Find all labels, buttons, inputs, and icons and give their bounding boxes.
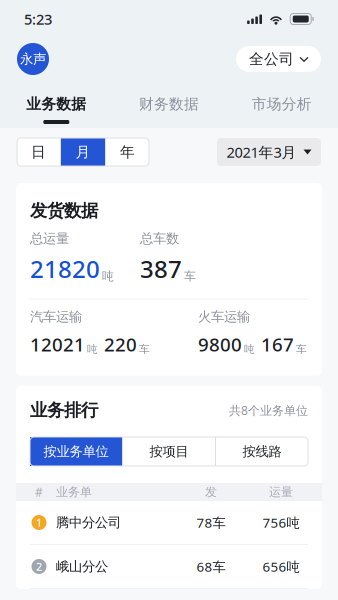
button[interactable]: 1 bbox=[16, 501, 322, 544]
staticText: 21820 bbox=[30, 253, 100, 285]
staticText: 总车数 bbox=[140, 230, 179, 247]
staticText: 总运量 bbox=[30, 230, 69, 247]
button[interactable]: 公司徽标 bbox=[17, 43, 49, 75]
staticText: 按线路 bbox=[242, 443, 281, 460]
button[interactable]: 按项目 bbox=[123, 437, 215, 466]
staticText: 按项目 bbox=[149, 443, 188, 460]
staticText: 吨 bbox=[102, 269, 114, 283]
staticText: 火车运输 bbox=[198, 308, 250, 325]
staticText: 2021年3月 bbox=[226, 142, 296, 162]
staticText: 汽车运输 bbox=[30, 308, 82, 325]
staticText: 业务排行 bbox=[30, 400, 98, 421]
staticText: 业务单 bbox=[56, 485, 92, 499]
staticText: 全公司 bbox=[249, 50, 294, 68]
button[interactable]: 全公司 bbox=[236, 46, 321, 72]
staticText: 656吨 bbox=[262, 558, 299, 575]
staticText: 车 bbox=[296, 343, 307, 356]
button[interactable]: 2021年3月 bbox=[217, 138, 321, 166]
button[interactable]: 按线路 bbox=[216, 437, 308, 466]
staticText: 峨山分公 bbox=[56, 558, 108, 575]
staticText: 12021 bbox=[30, 332, 85, 357]
staticText: 9800 bbox=[198, 332, 242, 357]
staticText: 共8个业务单位 bbox=[229, 402, 308, 418]
staticText: 2 bbox=[36, 559, 42, 574]
staticText: 68车 bbox=[196, 558, 225, 575]
staticText: 387 bbox=[140, 253, 182, 285]
staticText: 756吨 bbox=[262, 514, 299, 531]
staticText: 市场分析 bbox=[252, 95, 312, 113]
button[interactable]: 业务数据 bbox=[0, 92, 113, 126]
button[interactable]: 日 bbox=[17, 138, 60, 166]
staticText: 运量 bbox=[269, 485, 293, 499]
staticText: 发货数据 bbox=[30, 200, 98, 221]
staticText: 1 bbox=[36, 515, 42, 530]
staticText: 财务数据 bbox=[139, 95, 199, 113]
staticText: 年 bbox=[120, 143, 135, 161]
staticText: 日 bbox=[31, 143, 46, 161]
button[interactable]: 市场分析 bbox=[225, 92, 338, 126]
staticText: 发 bbox=[205, 485, 217, 499]
staticText: 220 bbox=[104, 332, 137, 357]
staticText: 78车 bbox=[196, 514, 225, 531]
staticText: 吨 bbox=[87, 343, 98, 356]
staticText: 车 bbox=[139, 343, 150, 356]
button[interactable]: 年 bbox=[106, 138, 149, 166]
staticText: 吨 bbox=[244, 343, 255, 356]
staticText: 业务数据 bbox=[26, 95, 86, 113]
staticText: 车 bbox=[184, 269, 196, 283]
button[interactable]: 按业务单位 bbox=[30, 437, 122, 466]
button[interactable]: 月 bbox=[61, 138, 105, 166]
staticText: # bbox=[35, 484, 43, 500]
staticText: 腾中分公司 bbox=[56, 514, 121, 531]
button[interactable]: 财务数据 bbox=[113, 92, 225, 126]
staticText: 167 bbox=[261, 332, 294, 357]
staticText: 5:23 bbox=[24, 9, 52, 29]
staticText: 月 bbox=[75, 143, 90, 161]
staticText: 永声 bbox=[20, 51, 46, 67]
staticText: 按业务单位 bbox=[43, 443, 108, 460]
button[interactable]: 2 bbox=[16, 545, 322, 588]
